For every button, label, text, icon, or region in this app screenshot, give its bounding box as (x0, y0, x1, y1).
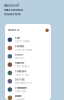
staticText: Shakespeare (15, 86, 27, 89)
staticText: Millions of (4, 4, 19, 7)
staticText: Playwright (15, 90, 26, 93)
button[interactable]: Socrates (5, 44, 51, 52)
staticText: Mozart (15, 95, 22, 98)
button[interactable]: Thor (5, 36, 51, 44)
button[interactable]: Shakespeare (5, 85, 51, 94)
staticText: Composer (15, 98, 25, 100)
staticText: Da Vinci (15, 78, 25, 81)
staticText: character.ai (8, 29, 20, 32)
staticText: Cleopatra (15, 70, 26, 73)
button[interactable]: Da Vinci (5, 77, 51, 85)
staticText: Greek philosopher (15, 49, 33, 51)
staticText: user-created (4, 8, 23, 11)
button[interactable]: Profile (45, 29, 49, 32)
staticText: Physicist (15, 57, 24, 59)
button[interactable]: Napoleon (5, 60, 51, 69)
staticText: Napoleon (15, 61, 24, 64)
button[interactable]: Cleopatra (5, 69, 51, 77)
staticText: Characters (4, 13, 20, 16)
staticText: Socrates (15, 45, 24, 48)
staticText: God of Thunder (15, 40, 30, 43)
staticText: French Emperor (15, 65, 30, 68)
button[interactable]: Einstein (5, 52, 51, 60)
staticText: Queen of Egypt (15, 74, 30, 76)
staticText: Renaissance artist (15, 82, 33, 84)
staticText: Thor (15, 37, 20, 39)
staticText: Einstein (15, 53, 23, 56)
button[interactable]: Mozart (5, 94, 51, 100)
